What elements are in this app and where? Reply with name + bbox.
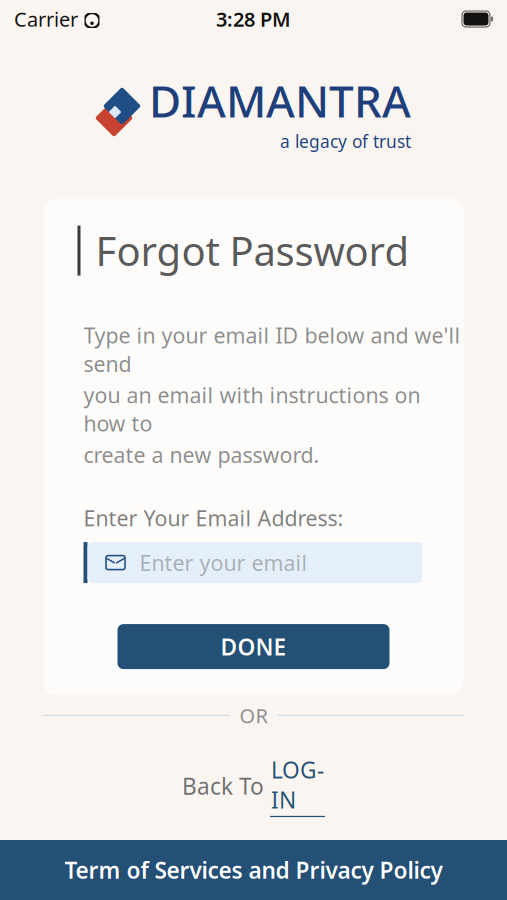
staticText: DIAMANTRA	[149, 71, 411, 130]
button[interactable]: Back To	[43, 747, 463, 825]
staticText: create a new password.	[83, 440, 319, 469]
staticText: Type in your email ID below and we'll se…	[83, 321, 460, 378]
staticText: LOGIN	[271, 755, 324, 815]
staticText: Term of Services and Privacy Policy	[64, 855, 442, 885]
staticText: 3:28 PM	[216, 6, 291, 32]
staticText: a legacy of trust	[280, 130, 411, 153]
staticText: Forgot Password	[95, 224, 409, 277]
staticText: DONE	[220, 631, 286, 662]
staticText: Enter Your Email Address:	[83, 504, 343, 532]
button[interactable]: Term of Services and Privacy Policy	[0, 840, 507, 900]
button[interactable]: DONE	[117, 624, 389, 669]
staticText: you an email with instructions on how to	[83, 381, 420, 437]
staticText: Enter your email	[139, 548, 307, 577]
staticText: Carrier	[14, 6, 78, 32]
staticText: OR	[239, 702, 267, 729]
staticText: Back To	[182, 771, 264, 801]
